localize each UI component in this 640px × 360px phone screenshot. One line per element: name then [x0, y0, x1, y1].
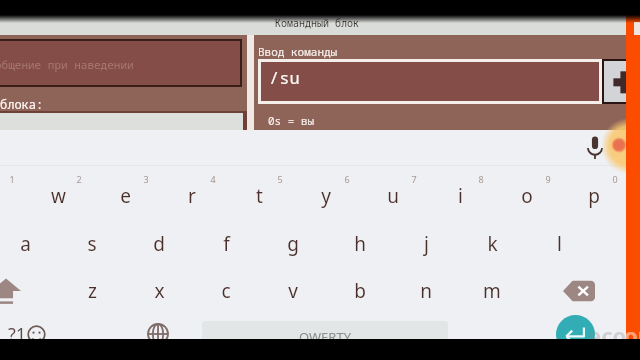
staticText: 1: [9, 173, 15, 185]
staticText: k: [487, 231, 498, 257]
staticText: 2: [76, 173, 82, 185]
button[interactable]: j: [402, 224, 450, 264]
button[interactable]: ?1: [0, 314, 46, 354]
staticText: 4: [210, 173, 216, 185]
button[interactable]: t: [235, 176, 283, 216]
staticText: f: [223, 231, 230, 257]
button[interactable]: b: [336, 271, 384, 311]
staticText: s: [87, 231, 97, 257]
staticText: 5: [277, 173, 283, 185]
staticText: g: [287, 231, 299, 257]
staticText: Командный блок: [275, 16, 359, 30]
staticText: o: [521, 183, 533, 209]
button[interactable]: u: [369, 176, 417, 216]
button[interactable]: o: [503, 176, 551, 216]
staticText: r: [188, 183, 196, 209]
staticText: h: [354, 231, 366, 257]
staticText: p: [588, 183, 600, 209]
staticText: ?1: [8, 322, 27, 347]
button[interactable]: f: [202, 224, 250, 264]
button[interactable]: общение при наведении: [0, 41, 240, 85]
staticText: a: [20, 231, 31, 257]
staticText: x: [154, 278, 165, 304]
staticText: t: [256, 183, 263, 209]
staticText: блока:: [0, 96, 44, 112]
staticText: b: [354, 278, 366, 304]
button[interactable]: s: [68, 224, 116, 264]
staticText: ecord: [588, 320, 640, 350]
button[interactable]: p: [570, 176, 618, 216]
button[interactable]: w: [34, 176, 82, 216]
button[interactable]: m: [468, 271, 516, 311]
button[interactable]: Shift: [0, 271, 32, 311]
staticText: y: [321, 183, 331, 209]
staticText: 3: [143, 173, 149, 185]
staticText: 0: [612, 173, 618, 185]
button[interactable]: h: [336, 224, 384, 264]
button[interactable]: c: [202, 271, 250, 311]
staticText: u: [387, 183, 399, 209]
staticText: общение при наведении: [0, 57, 134, 72]
button[interactable]: k: [468, 224, 516, 264]
button[interactable]: Change language: [140, 314, 176, 354]
button[interactable]: QWERTY: [202, 321, 448, 351]
staticText: Ввод команды: [258, 44, 338, 59]
staticText: 7: [411, 173, 417, 185]
button[interactable]: n: [402, 271, 450, 311]
button[interactable]: q: [0, 176, 15, 216]
button[interactable]: Backspace: [554, 271, 604, 311]
button[interactable]: d: [135, 224, 183, 264]
button[interactable]: Enter: [556, 315, 595, 354]
button[interactable]: r: [168, 176, 216, 216]
staticText: c: [221, 278, 231, 304]
staticText: e: [120, 183, 131, 209]
staticText: m: [483, 278, 501, 304]
button[interactable]: y: [302, 176, 350, 216]
staticText: w: [51, 183, 66, 209]
button[interactable]: g: [269, 224, 317, 264]
staticText: ord: [624, 320, 640, 350]
button[interactable]: z: [68, 271, 116, 311]
staticText: 9: [545, 173, 551, 185]
staticText: l: [557, 231, 562, 257]
staticText: d: [153, 231, 165, 257]
button[interactable]: a: [1, 224, 49, 264]
button[interactable]: x: [135, 271, 183, 311]
button[interactable]: v: [269, 271, 317, 311]
staticText: 0s = вы: [268, 113, 315, 128]
button[interactable]: i: [436, 176, 484, 216]
button[interactable]: Voice input: [581, 134, 609, 164]
staticText: /su: [269, 66, 300, 89]
button[interactable]: /su: [261, 62, 599, 101]
staticText: z: [88, 278, 97, 304]
staticText: j: [424, 231, 429, 257]
button[interactable]: l: [535, 224, 583, 264]
staticText: 6: [344, 173, 350, 185]
staticText: 8: [478, 173, 484, 185]
button[interactable]: e: [101, 176, 149, 216]
staticText: QWERTY: [299, 328, 352, 346]
staticText: n: [420, 278, 432, 304]
staticText: i: [458, 183, 463, 209]
staticText: v: [288, 278, 298, 304]
button[interactable]: Add: [604, 61, 638, 102]
